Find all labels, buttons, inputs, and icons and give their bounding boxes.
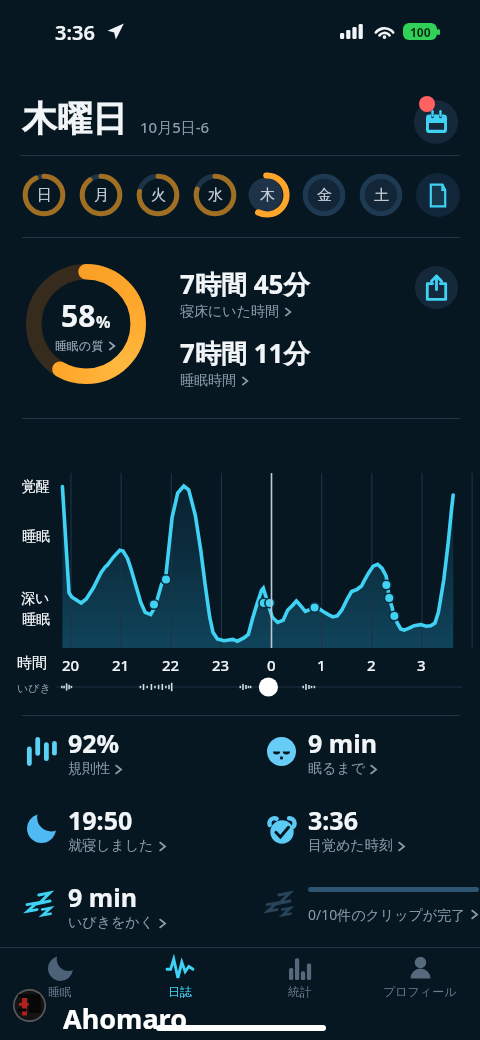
staticText: 2 — [367, 655, 376, 675]
button[interactable]: 日誌 — [120, 948, 240, 1006]
staticText: 日誌 — [168, 984, 192, 999]
button[interactable]: 7時間 45分 — [180, 266, 310, 321]
staticText: % — [96, 311, 111, 333]
staticText: 火 — [151, 186, 166, 205]
button[interactable]: Notes — [414, 171, 462, 219]
button[interactable]: 日 — [20, 171, 68, 219]
staticText: 睡眠の質 — [55, 338, 104, 353]
button[interactable]: 92% — [25, 713, 240, 790]
button[interactable]: 火 — [134, 171, 182, 219]
staticText: 10月5日-6 — [140, 117, 210, 137]
button[interactable]: プロフィール — [360, 948, 480, 1006]
button[interactable]: 睡眠 — [0, 948, 120, 1006]
staticText: 日 — [37, 186, 52, 205]
staticText: 規則性 — [68, 760, 110, 778]
button[interactable]: 水 — [191, 171, 239, 219]
staticText: 睡眠 — [22, 528, 50, 546]
staticText: プロフィール — [383, 984, 457, 999]
button[interactable]: 9 min — [25, 867, 240, 944]
staticText: 3 — [417, 655, 426, 675]
staticText: 木 — [260, 186, 275, 205]
staticText: 目覚めた時刻 — [308, 837, 393, 855]
staticText: 92% — [68, 726, 120, 760]
staticText: いびき — [17, 681, 51, 695]
button[interactable]: 0/10件のクリップが完了 — [265, 867, 480, 944]
button[interactable]: 3:36 — [265, 790, 480, 867]
staticText: 月 — [94, 186, 109, 205]
staticText: 3:36 — [55, 19, 95, 46]
button[interactable]: 木 — [243, 171, 291, 219]
staticText: 深い — [21, 590, 50, 608]
staticText: 7時間 11分 — [180, 335, 310, 371]
staticText: Ahomaro — [63, 1000, 188, 1037]
staticText: 9 min — [68, 880, 137, 914]
staticText: 0 — [267, 655, 276, 675]
staticText: 100 — [410, 24, 431, 40]
button[interactable]: 金 — [300, 171, 348, 219]
button[interactable]: 統計 — [240, 948, 360, 1006]
button[interactable]: 木曜日 — [22, 97, 127, 141]
staticText: 就寝しました — [68, 837, 154, 855]
staticText: いびきをかく — [68, 914, 154, 932]
button[interactable]: 19:50 — [25, 790, 240, 867]
staticText: 22 — [162, 655, 180, 675]
staticText: 19:50 — [68, 803, 133, 837]
staticText: 1 — [317, 655, 326, 675]
button[interactable]: 土 — [357, 171, 405, 219]
staticText: 寝床にいた時間 — [180, 303, 279, 321]
staticText: 0/10件のクリップが完了 — [308, 905, 466, 924]
staticText: 睡眠時間 — [180, 372, 236, 390]
button[interactable]: 58 — [24, 262, 148, 386]
staticText: 23 — [212, 655, 230, 675]
staticText: 金 — [317, 186, 332, 205]
staticText: 水 — [208, 186, 223, 205]
staticText: 3:36 — [308, 803, 358, 837]
staticText: 覚醒 — [22, 478, 50, 496]
staticText: 眠るまで — [308, 760, 365, 778]
button[interactable]: Share — [413, 264, 459, 310]
staticText: 9 min — [308, 726, 377, 760]
staticText: 21 — [112, 655, 130, 675]
staticText: 睡眠 — [48, 984, 72, 999]
staticText: 20 — [62, 655, 80, 675]
staticText: 土 — [374, 186, 389, 205]
button[interactable]: 7時間 11分 — [180, 335, 310, 390]
staticText: 統計 — [288, 984, 312, 999]
button[interactable]: Calendar — [411, 97, 461, 147]
staticText: 58 — [61, 295, 96, 336]
button[interactable]: 9 min — [265, 713, 480, 790]
staticText: 時間 — [17, 654, 47, 673]
staticText: 7時間 45分 — [180, 266, 310, 302]
staticText: 睡眠 — [22, 611, 50, 629]
button[interactable]: 月 — [77, 171, 125, 219]
